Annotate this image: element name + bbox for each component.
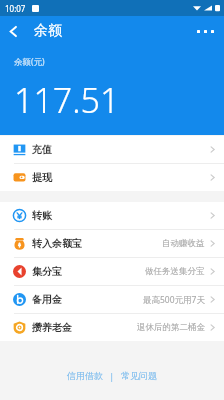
staticText: 余额 bbox=[34, 22, 62, 40]
staticText: 做任务送集分宝 bbox=[145, 266, 205, 277]
button[interactable]: Back bbox=[0, 18, 26, 44]
staticText: 集分宝 bbox=[32, 265, 62, 278]
staticText: 余额(元) bbox=[14, 56, 45, 68]
button[interactable]: 集分宝 bbox=[0, 258, 224, 285]
button[interactable]: 提现 bbox=[0, 164, 224, 191]
staticText: 自动赚收益 bbox=[162, 238, 205, 249]
button[interactable]: 转账 bbox=[0, 202, 224, 229]
staticText: 充值 bbox=[32, 143, 52, 156]
staticText: 转账 bbox=[32, 209, 52, 222]
button[interactable]: 常见问题 bbox=[117, 367, 161, 384]
button[interactable]: 备用金 bbox=[0, 286, 224, 313]
staticText: 备用金 bbox=[32, 293, 62, 306]
staticText: 最高500元用7天 bbox=[143, 294, 205, 306]
staticText: 常见问题 bbox=[121, 370, 157, 381]
button[interactable]: 转入余额宝 bbox=[0, 230, 224, 257]
staticText: 提现 bbox=[32, 171, 52, 184]
staticText: | bbox=[107, 370, 117, 382]
staticText: 信用借款 bbox=[67, 370, 103, 381]
staticText: 攒养老金 bbox=[32, 321, 72, 334]
button[interactable]: 充值 bbox=[0, 136, 224, 163]
staticText: 转入余额宝 bbox=[32, 237, 82, 250]
staticText: 117.51 bbox=[14, 77, 120, 123]
button[interactable]: 信用借款 bbox=[63, 367, 107, 384]
staticText: 10:07 bbox=[5, 3, 26, 14]
button[interactable]: 攒养老金 bbox=[0, 314, 224, 341]
button[interactable]: More options bbox=[192, 18, 218, 44]
staticText: 退休后的第二桶金 bbox=[137, 322, 205, 333]
